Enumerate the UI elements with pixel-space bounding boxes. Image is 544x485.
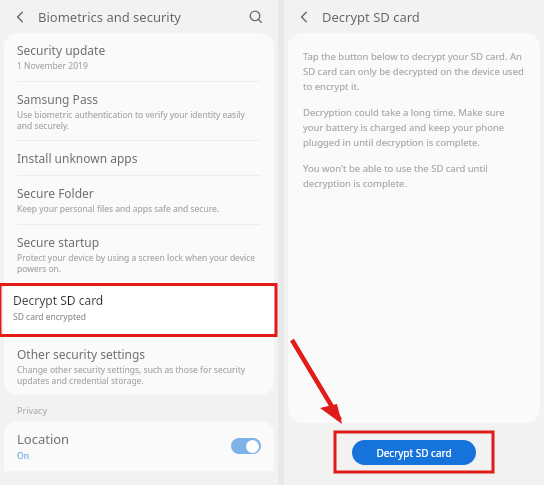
staticText: Decryption could take a long time. Make … (303, 106, 527, 149)
button[interactable]: Other security settings (4, 337, 274, 395)
staticText: Use biometric authentication to verify y… (17, 109, 245, 131)
button[interactable]: Samsung Pass (4, 82, 274, 141)
button[interactable]: Secure Folder (4, 176, 274, 225)
staticText: Biometrics and security (38, 8, 182, 26)
staticText: You won't be able to use the SD card unt… (303, 162, 527, 190)
button[interactable]: Location (4, 421, 274, 471)
staticText: Secure Folder (17, 185, 94, 201)
staticText: Protect your device by using a screen lo… (17, 252, 256, 274)
staticText: Install unknown apps (17, 150, 138, 166)
button[interactable]: Search (242, 3, 270, 31)
button[interactable]: Back (6, 3, 34, 31)
staticText: Decrypt SD card (13, 292, 104, 308)
staticText: Decrypt SD card (376, 446, 452, 460)
staticText: Privacy (17, 404, 48, 416)
button[interactable]: Decrypt SD card (4, 283, 274, 337)
button[interactable]: Security update (4, 33, 274, 82)
button[interactable]: Install unknown apps (4, 141, 274, 176)
button[interactable]: Decrypt SD card (352, 440, 476, 465)
staticText: Samsung Pass (17, 91, 99, 107)
button[interactable]: Back (290, 3, 318, 31)
staticText: Secure startup (17, 234, 100, 250)
staticText: Change other security settings, such as … (17, 364, 246, 386)
staticText: SD card encrypted (13, 311, 86, 323)
button[interactable]: Secure startup (4, 225, 274, 283)
staticText: On (17, 450, 29, 462)
staticText: Keep your personal files and apps safe a… (17, 203, 220, 215)
staticText: Other security settings (17, 346, 146, 362)
staticText: 1 November 2019 (17, 60, 88, 72)
button[interactable]: Location toggle (231, 438, 261, 454)
staticText: Location (17, 430, 70, 448)
staticText: Tap the button below to decrypt your SD … (303, 50, 527, 93)
staticText: Decrypt SD card (322, 8, 420, 26)
staticText: Security update (17, 42, 106, 58)
